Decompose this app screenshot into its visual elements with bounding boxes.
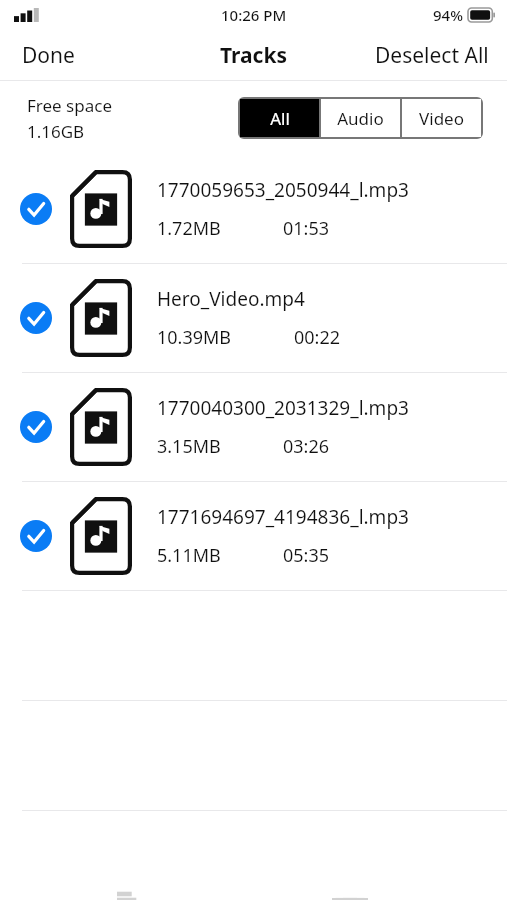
staticText: 10:26 PM xyxy=(221,5,287,25)
staticText: 3.15MB xyxy=(157,434,221,459)
button[interactable]: Video xyxy=(402,99,481,137)
staticText: Deselect All xyxy=(375,41,489,70)
button[interactable]: All xyxy=(240,99,319,137)
staticText: Video xyxy=(419,107,464,130)
button[interactable]: 1771694697_4194836_l.mp3 xyxy=(0,482,507,590)
staticText: 10.39MB xyxy=(157,325,232,350)
staticText: 05:35 xyxy=(283,543,330,568)
button[interactable]: 1770059653_2050944_l.mp3 xyxy=(0,155,507,263)
staticText: 94% xyxy=(433,5,463,25)
staticText: 1771694697_4194836_l.mp3 xyxy=(157,504,409,530)
staticText: 1.72MB xyxy=(157,216,221,241)
staticText: Hero_Video.mp4 xyxy=(157,286,305,312)
button[interactable]: Audio xyxy=(321,99,400,137)
button[interactable]: Done xyxy=(0,33,97,78)
staticText: 01:53 xyxy=(283,216,330,241)
staticText: 1770059653_2050944_l.mp3 xyxy=(157,177,409,203)
button[interactable]: 1770040300_2031329_l.mp3 xyxy=(0,373,507,481)
staticText: 1770040300_2031329_l.mp3 xyxy=(157,395,409,421)
staticText: 1.16GB xyxy=(27,120,85,143)
staticText: Audio xyxy=(337,107,384,130)
button[interactable]: Hero_Video.mp4 xyxy=(0,264,507,372)
staticText: Tracks xyxy=(220,41,288,70)
staticText: 03:26 xyxy=(283,434,330,459)
staticText: 5.11MB xyxy=(157,543,221,568)
staticText: Free space xyxy=(27,94,112,117)
staticText: All xyxy=(270,107,290,130)
staticText: 00:22 xyxy=(294,325,341,350)
staticText: Done xyxy=(22,41,75,70)
button[interactable]: Deselect All xyxy=(357,33,507,78)
